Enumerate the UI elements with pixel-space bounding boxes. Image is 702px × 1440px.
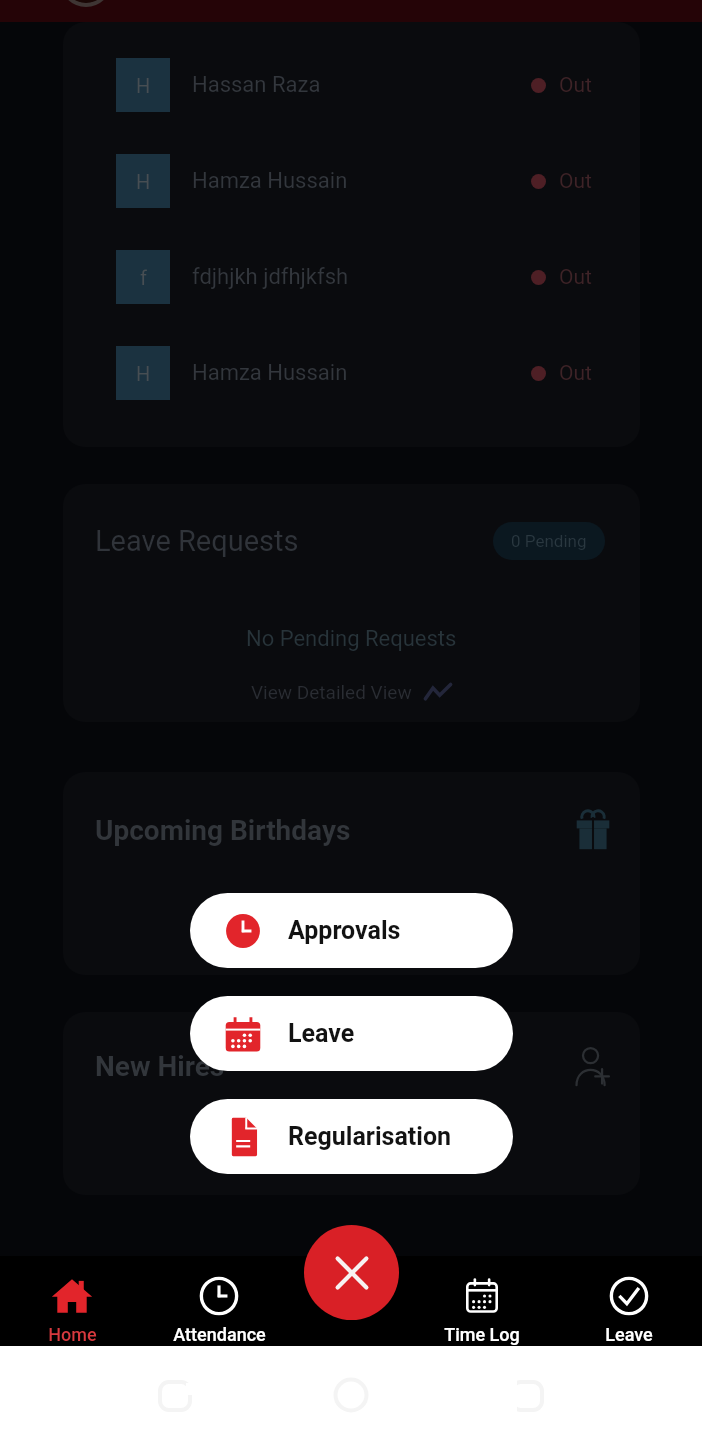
button[interactable]: Time Log bbox=[416, 1256, 548, 1346]
staticText: New Hires bbox=[95, 1050, 225, 1083]
staticText: Time Log bbox=[444, 1324, 520, 1345]
button[interactable]: 0 Pending bbox=[493, 522, 605, 560]
button[interactable]: H bbox=[116, 133, 592, 229]
staticText: Out bbox=[559, 73, 592, 98]
staticText: H bbox=[136, 362, 151, 385]
button[interactable]: Leave bbox=[190, 996, 513, 1071]
staticText: Attendance bbox=[173, 1324, 266, 1345]
staticText: No Pending Requests bbox=[246, 626, 457, 652]
button[interactable]: f bbox=[116, 229, 592, 325]
staticText: Leave bbox=[605, 1324, 653, 1345]
button[interactable]: H bbox=[116, 37, 592, 133]
button[interactable]: Approvals bbox=[190, 893, 513, 968]
staticText: Hassan Raza bbox=[192, 72, 321, 98]
button[interactable]: View Detailed View bbox=[248, 678, 455, 706]
other: Birthdays bbox=[576, 810, 610, 850]
button[interactable]: Close menu bbox=[304, 1225, 399, 1320]
staticText: View Detailed View bbox=[251, 681, 412, 703]
staticText: Out bbox=[559, 361, 592, 386]
staticText: H bbox=[136, 74, 151, 97]
staticText: Out bbox=[559, 169, 592, 194]
button[interactable]: Regularisation bbox=[190, 1099, 513, 1174]
other: Add new hire bbox=[574, 1046, 610, 1086]
staticText: Regularisation bbox=[288, 1122, 452, 1151]
staticText: 0 Pending bbox=[511, 531, 587, 551]
staticText: Hamza Hussain bbox=[192, 168, 348, 194]
staticText: H bbox=[136, 170, 151, 193]
staticText: Home bbox=[48, 1324, 97, 1345]
button[interactable]: Attendance bbox=[153, 1256, 285, 1346]
staticText: Out bbox=[559, 265, 592, 290]
staticText: f bbox=[140, 266, 147, 289]
staticText: Leave bbox=[288, 1019, 355, 1048]
staticText: Leave Requests bbox=[95, 524, 299, 558]
staticText: fdjhjkh jdfhjkfsh bbox=[192, 264, 349, 290]
staticText: Upcoming Birthdays bbox=[95, 814, 351, 847]
button[interactable]: Leave bbox=[563, 1256, 695, 1346]
staticText: Hamza Hussain bbox=[192, 360, 348, 386]
button[interactable]: H bbox=[116, 325, 592, 421]
staticText: Approvals bbox=[288, 916, 401, 945]
button[interactable]: Home bbox=[6, 1256, 138, 1346]
